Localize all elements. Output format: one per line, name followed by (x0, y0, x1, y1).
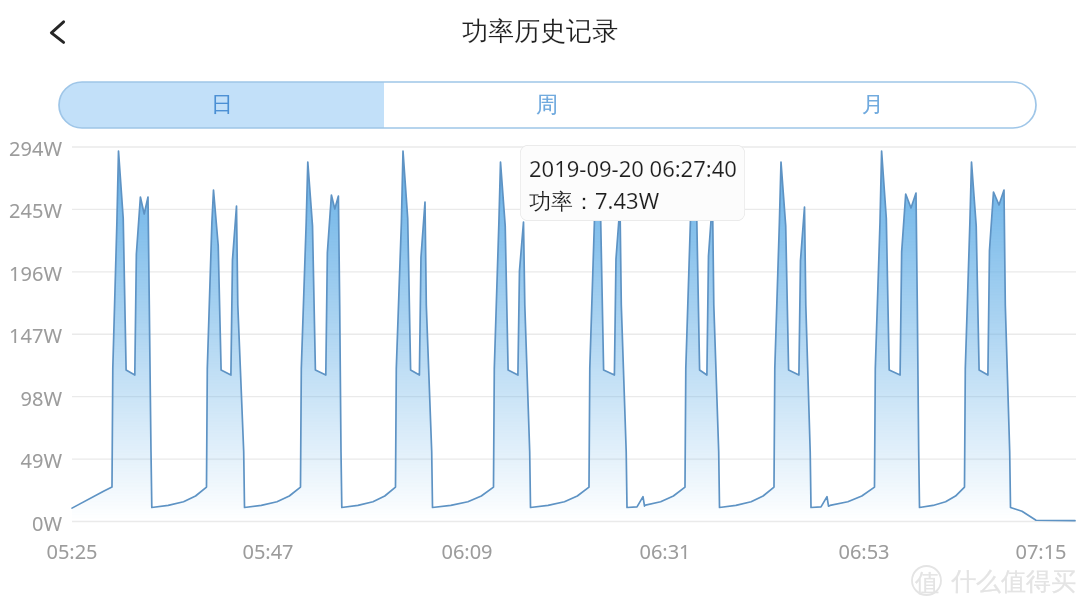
staticText: 06:09 (417, 538, 517, 565)
staticText: 周 (536, 91, 558, 119)
staticText: 07:15 (991, 538, 1080, 565)
staticText: 值 (915, 568, 939, 598)
button[interactable]: Back (32, 7, 84, 59)
staticText: 0W (0, 510, 62, 537)
staticText: 196W (0, 260, 62, 287)
button[interactable]: 日 (59, 82, 384, 128)
staticText: 2019-09-20 06:27:40 (529, 153, 737, 183)
staticText: 功率：7.43W (529, 185, 660, 215)
staticText: 月 (862, 91, 884, 119)
staticText: 功率历史记录 (462, 15, 618, 48)
staticText: 49W (0, 447, 62, 474)
staticText: 245W (0, 197, 62, 224)
staticText: 什么值得买 (951, 566, 1076, 597)
staticText: 日 (211, 91, 233, 119)
staticText: 147W (0, 322, 62, 349)
staticText: 06:53 (814, 538, 914, 565)
staticText: 294W (0, 135, 62, 162)
staticText: 06:31 (615, 538, 715, 565)
button[interactable]: 月 (710, 82, 1036, 128)
staticText: 98W (0, 385, 62, 412)
staticText: 05:47 (218, 538, 318, 565)
staticText: 05:25 (22, 538, 122, 565)
button[interactable]: 周 (384, 82, 710, 128)
